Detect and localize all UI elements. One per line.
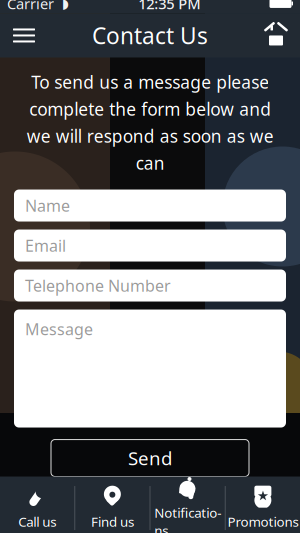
staticText: Find us [91, 513, 134, 530]
staticText: ★ [257, 488, 269, 503]
staticText: Carrier [7, 0, 54, 13]
staticText: Contact Us [92, 20, 208, 50]
button[interactable]: Home [252, 13, 300, 57]
button[interactable]: ★ [226, 476, 300, 533]
staticText: Notifications [154, 504, 221, 533]
staticText: ◗ [54, 0, 69, 11]
staticText: Email [25, 235, 66, 256]
button[interactable]: Call us [0, 476, 74, 533]
button[interactable]: Send [51, 439, 249, 476]
staticText: 12:35 PM [138, 0, 200, 13]
staticText: Send [128, 446, 172, 470]
staticText: Call us [18, 513, 56, 530]
staticText: Promotions [227, 513, 298, 530]
button[interactable]: Email [14, 229, 286, 261]
button[interactable]: Menu [0, 13, 48, 57]
button[interactable]: Telephone Number [14, 269, 286, 301]
staticText: Telephone Number [25, 275, 171, 296]
button[interactable]: Find us [75, 476, 149, 533]
button[interactable]: Message [14, 309, 286, 427]
button[interactable]: Notifications [150, 476, 225, 533]
staticText: Message [25, 318, 93, 340]
staticText: To send us a message please complete the… [26, 70, 273, 175]
button[interactable]: Name [14, 189, 286, 221]
staticText: Name [25, 195, 70, 216]
